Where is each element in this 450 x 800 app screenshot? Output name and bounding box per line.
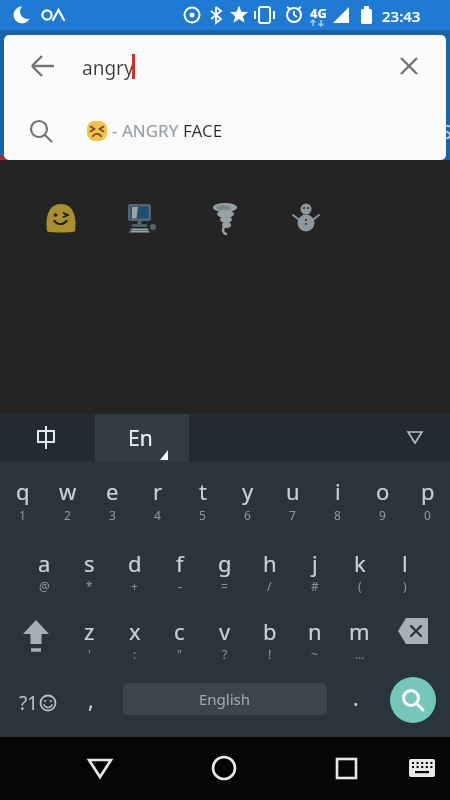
button[interactable] [8,604,64,672]
button[interactable]: y [225,462,270,534]
button[interactable] [70,743,130,795]
button[interactable]: p [405,462,450,534]
button[interactable]: b [247,604,292,672]
staticText: * [86,578,93,594]
staticText: @ [39,578,50,594]
button[interactable]: c [157,604,202,672]
button[interactable]: l [382,534,427,604]
staticText: + [131,578,138,594]
staticText: q [16,476,30,506]
staticText: ' [88,646,91,662]
button[interactable]: - ANGRY [4,97,446,160]
staticText: e [106,476,119,506]
staticText: d [128,548,142,578]
staticText: 5 [199,507,206,523]
button[interactable]: ?1 [8,672,68,734]
button[interactable]: g [202,534,247,604]
staticText: t [199,476,207,506]
staticText: 0 [424,507,431,523]
staticText: n [308,616,322,646]
button[interactable]: m [337,604,382,672]
button[interactable] [398,743,446,795]
button[interactable] [45,202,79,236]
staticText: u [286,476,300,506]
button[interactable]: d [112,534,157,604]
button[interactable]: z [67,604,112,672]
staticText: a [38,548,51,578]
button[interactable] [18,77,62,121]
button[interactable] [28,44,58,88]
button[interactable] [95,414,189,462]
staticText: y [242,476,254,506]
button[interactable]: a [22,534,67,604]
staticText: w [59,476,77,506]
button[interactable]: s [67,534,112,604]
button[interactable]: o [360,462,405,534]
button[interactable]: r [135,462,180,534]
staticText: m [349,616,370,646]
button[interactable]: x [112,604,157,672]
button[interactable]: n [292,604,337,672]
button[interactable]: English [123,683,327,715]
staticText: ) [403,578,407,594]
button[interactable] [194,743,254,795]
staticText: b [263,616,277,646]
staticText: ~ [311,646,318,662]
staticText: 6 [244,507,251,523]
staticText: 7 [289,507,296,523]
staticText: v [219,616,231,646]
button[interactable] [390,414,440,462]
button[interactable]: . [353,684,359,713]
staticText: p [421,476,435,506]
staticText: # [311,578,319,594]
staticText: k [354,548,366,578]
staticText: FACE [183,119,223,142]
button[interactable] [124,202,158,236]
staticText: 4G [310,4,327,22]
button[interactable] [289,202,323,236]
button[interactable] [394,44,424,88]
staticText: / [267,578,272,594]
staticText: - [178,578,182,594]
staticText: : [133,646,137,662]
button[interactable]: h [247,534,292,604]
button[interactable]: u [270,462,315,534]
staticText: ?1 [19,690,39,716]
staticText: English [199,689,251,709]
button[interactable]: e [90,462,135,534]
button[interactable]: i [315,462,360,534]
staticText: c [174,616,185,646]
button[interactable] [10,414,82,462]
staticText: " [177,646,182,662]
staticText: s [84,548,95,578]
staticText: ! [268,646,272,662]
staticText: g [218,548,232,578]
staticText: 8 [334,507,341,523]
staticText: = [221,578,228,594]
staticText: ? [222,646,228,662]
button[interactable] [390,677,436,723]
button[interactable]: q [0,462,45,534]
button[interactable]: k [337,534,382,604]
staticText: z [84,616,95,646]
staticText: f [176,548,184,578]
staticText: 1 [19,507,26,523]
button[interactable] [208,202,242,236]
button[interactable] [386,604,442,672]
button[interactable]: , [88,686,94,715]
button[interactable]: t [180,462,225,534]
button[interactable]: j [292,534,337,604]
staticText: i [335,476,341,506]
staticText: 2 [64,507,71,523]
staticText: o [376,476,390,506]
staticText: 4 [154,507,161,523]
staticText: j [312,548,318,578]
staticText: … [355,646,365,662]
button[interactable] [316,743,376,795]
button[interactable]: w [45,462,90,534]
button[interactable]: v [202,604,247,672]
button[interactable]: f [157,534,202,604]
staticText: 9 [379,507,386,523]
staticText: 23:43 [382,6,421,26]
staticText: ( [358,578,362,594]
